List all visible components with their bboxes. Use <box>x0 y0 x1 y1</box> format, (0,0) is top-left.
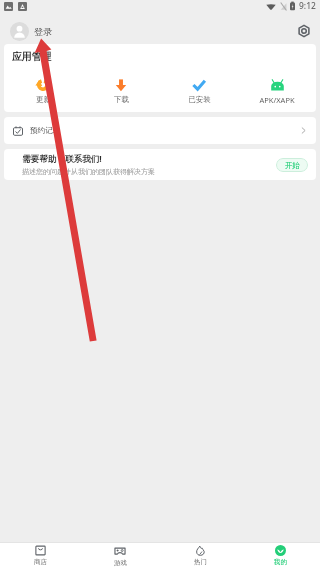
staticText: 应用管理 <box>12 51 52 63</box>
staticText: 游戏 <box>114 559 127 567</box>
button[interactable]: 热门 <box>160 543 240 568</box>
staticText: 我的 <box>274 558 287 566</box>
button[interactable]: 登录 <box>10 22 53 41</box>
button[interactable]: 更新 <box>4 78 82 104</box>
staticText: 热门 <box>194 558 207 566</box>
button[interactable]: 预约记录 <box>4 117 316 144</box>
staticText: 商店 <box>34 558 47 566</box>
staticText: 开始 <box>285 161 300 170</box>
button[interactable]: 我的 <box>240 543 320 568</box>
button[interactable]: Settings <box>293 20 315 42</box>
staticText: 描述您的问题并从我们的团队获得解决方案 <box>22 167 155 176</box>
button[interactable]: 游戏 <box>80 543 160 568</box>
staticText: 登录 <box>34 26 53 38</box>
staticText: APK/XAPK <box>259 95 295 105</box>
button[interactable]: APK/XAPK <box>238 78 316 105</box>
button[interactable]: 商店 <box>0 543 80 568</box>
staticText: 9:12 <box>299 0 316 12</box>
button[interactable]: 下载 <box>82 78 160 104</box>
button[interactable]: 已安装 <box>160 78 238 104</box>
staticText: 更新 <box>36 95 51 104</box>
staticText: 预约记录 <box>30 126 61 136</box>
staticText: 已安装 <box>188 95 211 104</box>
staticText: 下载 <box>114 95 129 104</box>
button[interactable]: 开始 <box>276 158 308 172</box>
staticText: 需要帮助？联系我们! <box>22 153 102 165</box>
